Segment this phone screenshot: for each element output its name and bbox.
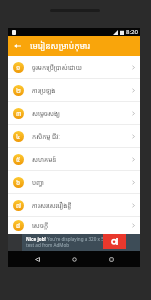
staticText: ការសរសេររឿងខ្លី [32, 201, 72, 210]
staticText: ៧ [16, 201, 22, 210]
button[interactable]: Back [8, 36, 27, 56]
button[interactable]: ១ [8, 56, 140, 79]
staticText: សម្ដេចសង្ឃ [32, 109, 61, 118]
button[interactable]: ៤ [8, 125, 140, 148]
button[interactable]: ៥ [8, 148, 140, 171]
staticText: បញ្ហា [32, 178, 45, 187]
staticText: សេចក្ដី [32, 221, 49, 230]
button[interactable]: ៧ [8, 194, 140, 217]
staticText: មេរៀនសម្រាប់កុមារ [30, 40, 90, 52]
staticText: សហគមន៍ [32, 155, 57, 164]
staticText: ចូរមកប្រើប្រាស់ដោយ [32, 63, 82, 72]
staticText: ១ [16, 63, 21, 72]
staticText: ៥ [16, 155, 21, 164]
button[interactable]: ៣ [8, 102, 140, 125]
staticText: កសិកម្ម ជីវៈ [32, 132, 61, 141]
staticText: ការប្រឡង [32, 86, 56, 95]
button[interactable]: Advertisement [8, 234, 140, 251]
staticText: ៣ [16, 109, 22, 118]
button[interactable]: ២ [8, 79, 140, 102]
staticText: 8:20 [126, 28, 138, 36]
staticText: ២ [16, 86, 21, 95]
button[interactable]: Back [29, 251, 45, 267]
staticText: ៦ [16, 178, 21, 187]
staticText: test ad from AdMob [26, 242, 70, 248]
staticText: Nice job! You're displaying a 320 x 50 [26, 236, 107, 242]
staticText: ៤ [16, 132, 21, 141]
button[interactable]: Home [66, 251, 82, 267]
button[interactable]: ៨ [8, 217, 140, 234]
button[interactable]: Recent apps [103, 251, 119, 267]
button[interactable]: ៦ [8, 171, 140, 194]
staticText: ៨ [16, 221, 21, 230]
